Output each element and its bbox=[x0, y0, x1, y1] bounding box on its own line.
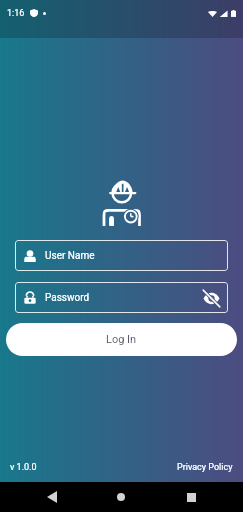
button[interactable]: Log In bbox=[6, 323, 237, 356]
staticText: User Name bbox=[45, 250, 95, 262]
button[interactable]: Show password bbox=[200, 287, 222, 309]
staticText: Password bbox=[45, 292, 90, 304]
button[interactable]: Home bbox=[101, 482, 141, 512]
button[interactable]: User Name bbox=[15, 240, 228, 271]
staticText: Log In bbox=[106, 333, 137, 346]
button[interactable]: Privacy Policy bbox=[177, 462, 233, 473]
button[interactable]: Password bbox=[15, 282, 228, 313]
staticText: v 1.0.0 bbox=[10, 462, 37, 473]
staticText: 1:16 bbox=[7, 8, 25, 19]
button[interactable]: Recent apps bbox=[171, 482, 211, 512]
button[interactable]: Back bbox=[32, 482, 72, 512]
